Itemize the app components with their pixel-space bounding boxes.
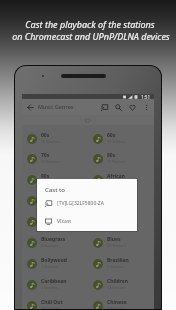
staticText: 3 Stations xyxy=(41,243,59,248)
button[interactable]: Brazilian xyxy=(88,253,154,274)
button[interactable]: Bollywood xyxy=(22,253,88,274)
button[interactable]: Cast xyxy=(97,99,111,115)
staticText: Caribbean xyxy=(41,278,67,285)
button[interactable]: 70s xyxy=(22,148,88,169)
staticText: 90s xyxy=(41,173,50,180)
staticText: 50 Stations xyxy=(41,201,61,206)
staticText: 2 Stations xyxy=(41,285,59,290)
button[interactable]: Search xyxy=(111,99,125,115)
staticText: Brazilian xyxy=(107,257,129,264)
button[interactable]: VIcast xyxy=(37,215,137,228)
button[interactable]: Arabic xyxy=(22,211,88,232)
staticText: 80s xyxy=(107,152,116,159)
staticText: Alternative xyxy=(41,194,70,201)
staticText: 13 Stations xyxy=(107,285,127,290)
button[interactable]: Ambient xyxy=(88,190,154,211)
staticText: Children xyxy=(107,278,128,285)
staticText: Blues xyxy=(107,236,121,243)
button[interactable]: Caribbean xyxy=(22,274,88,295)
staticText: Bollywood xyxy=(41,257,67,264)
staticText: 10 Stations xyxy=(41,139,61,144)
button[interactable]: Blues xyxy=(88,232,154,253)
button[interactable]: [TV]LG[32LF5800-ZA xyxy=(37,197,137,210)
staticText: Music Genres xyxy=(38,103,74,111)
button[interactable]: Favorites xyxy=(125,99,139,115)
button[interactable]: Children xyxy=(88,274,154,295)
staticText: 2 Stations xyxy=(41,264,59,269)
staticText: on Chromecast and UPnP/DLNA devices xyxy=(12,30,170,42)
staticText: 17 Stations xyxy=(107,139,127,144)
button[interactable]: 80s xyxy=(88,148,154,169)
button[interactable]: Chill Out xyxy=(22,295,88,309)
button[interactable]: Bluegrass xyxy=(22,232,88,253)
button[interactable]: More options xyxy=(139,99,153,115)
button[interactable]: 90s xyxy=(22,169,88,190)
button[interactable]: Alternative xyxy=(22,190,88,211)
staticText: Cast to xyxy=(45,186,65,194)
staticText: 7 Stations xyxy=(41,222,59,227)
staticText: Bluegrass xyxy=(41,236,66,243)
staticText: 00s xyxy=(41,132,50,139)
button[interactable]: Back xyxy=(22,99,38,115)
staticText: Cast the playback of the stations xyxy=(25,18,155,30)
staticText: VIcast xyxy=(57,218,72,225)
staticText: Chill Out xyxy=(41,299,63,306)
staticText: 1:51 xyxy=(141,94,151,99)
staticText: African xyxy=(107,173,125,180)
staticText: [TV]LG[32LF5800-ZA xyxy=(57,200,104,207)
staticText: Arabic xyxy=(41,215,57,222)
staticText: 31 Stations xyxy=(41,159,61,164)
button[interactable]: African xyxy=(88,169,154,190)
staticText: 5 Stations xyxy=(107,306,125,309)
staticText: 72 Stations xyxy=(107,159,127,164)
staticText: Chinese xyxy=(107,299,127,306)
button[interactable]: Chinese xyxy=(88,295,154,309)
button[interactable]: 00s xyxy=(22,128,88,149)
staticText: 70s xyxy=(41,152,50,159)
staticText: 5 Stations xyxy=(107,264,125,269)
button[interactable]: Asian xyxy=(88,211,154,232)
staticText: 16 Stations xyxy=(41,306,61,309)
staticText: 60s xyxy=(107,132,116,139)
staticText: 20 Stations xyxy=(107,243,127,248)
button[interactable]: 60s xyxy=(88,128,154,149)
